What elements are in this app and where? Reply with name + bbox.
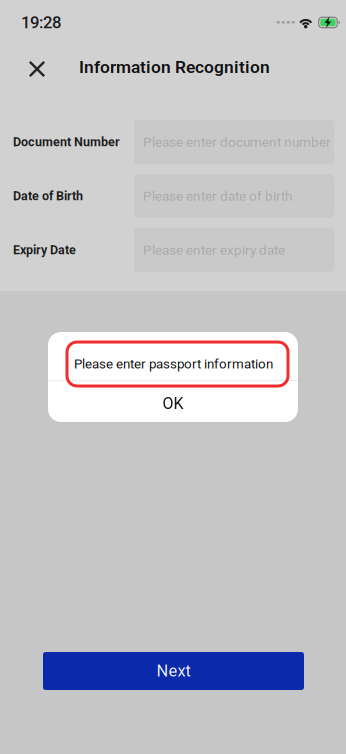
- button[interactable]: Close: [14, 45, 58, 89]
- staticText: Please enter document number: [143, 134, 331, 150]
- button[interactable]: Next: [43, 652, 304, 690]
- staticText: Please enter date of birth: [143, 188, 292, 204]
- staticText: Date of Birth: [13, 189, 83, 203]
- staticText: Expiry Date: [13, 243, 76, 257]
- button[interactable]: OK: [48, 381, 298, 422]
- staticText: Information Recognition: [79, 57, 270, 77]
- staticText: OK: [162, 394, 183, 413]
- staticText: Please enter passport information: [74, 356, 273, 372]
- staticText: Please enter expiry date: [143, 242, 285, 258]
- staticText: Document Number: [13, 135, 120, 149]
- staticText: 19:28: [21, 13, 61, 32]
- staticText: Next: [156, 661, 190, 681]
